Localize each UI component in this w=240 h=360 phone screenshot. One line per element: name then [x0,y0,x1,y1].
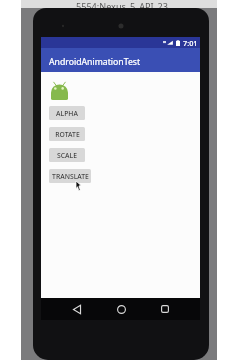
button[interactable]: ALPHA [49,106,85,120]
button[interactable]: Home [109,298,133,320]
staticText: 5554:Nexus_5_API_23 [76,0,169,8]
staticText: AndroidAnimationTest [49,56,141,68]
button[interactable]: Back [65,298,89,320]
staticText: ALPHA [56,109,78,118]
staticText: TRANSLATE [52,172,89,181]
button[interactable]: ROTATE [49,127,85,141]
button[interactable]: Recents [153,298,177,320]
staticText: SCALE [57,151,77,160]
staticText: 7:01 [183,38,198,48]
staticText: ROTATE [55,130,80,139]
button[interactable]: SCALE [49,148,85,162]
button[interactable]: AndroidAnimationTest [41,48,200,72]
button[interactable]: TRANSLATE [49,169,91,183]
